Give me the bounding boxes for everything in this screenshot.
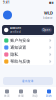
button[interactable]: 发现 — [14, 89, 28, 98]
staticText: 消息 — [32, 94, 38, 98]
staticText: 账户与安全 — [10, 38, 30, 43]
staticText: verified — [10, 30, 21, 34]
button[interactable]: 我的 — [42, 89, 56, 98]
staticText: Account — [10, 26, 21, 30]
staticText: ▮▮ ▮ — [49, 1, 53, 4]
button[interactable]: 通知设置 — [2, 44, 54, 51]
staticText: 隐私 — [10, 52, 18, 57]
staticText: 通知设置 — [10, 45, 26, 50]
staticText: 帮助与反馈 — [10, 59, 30, 64]
staticText: WLD — [44, 10, 53, 16]
staticText: 9:41 — [3, 1, 10, 4]
staticText: 首页 — [4, 94, 10, 98]
staticText: 退出登录 — [22, 79, 34, 83]
button[interactable]: 退出登录 — [3, 77, 53, 85]
staticText: 发现 — [18, 94, 24, 98]
staticText: Open — [43, 28, 51, 32]
staticText: balance — [43, 16, 53, 20]
button[interactable]: 隐私 — [2, 51, 54, 58]
button[interactable]: 首页 — [0, 89, 14, 98]
staticText: 我的 — [46, 94, 52, 98]
button[interactable]: 帮助与反馈 — [2, 58, 54, 65]
button[interactable]: 账户与安全 — [2, 37, 54, 44]
button[interactable]: 消息 — [28, 89, 42, 98]
